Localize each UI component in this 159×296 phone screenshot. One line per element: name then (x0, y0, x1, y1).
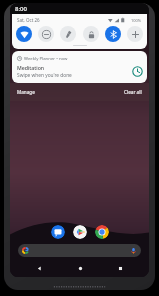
button[interactable]: Recent apps (109, 261, 131, 275)
button[interactable]: Flashlight (60, 26, 76, 42)
button[interactable]: Play Store (73, 225, 87, 239)
button[interactable]: Weekly Planner • now (12, 51, 147, 83)
button[interactable]: Manage (14, 87, 38, 97)
button[interactable]: Bluetooth (105, 26, 121, 42)
staticText: Clear all (124, 89, 142, 95)
button[interactable]: Messages (51, 225, 65, 239)
staticText: Meditation (17, 64, 45, 71)
button[interactable]: Do not disturb (38, 26, 54, 42)
button[interactable]: Add tile (127, 26, 143, 42)
button[interactable]: Clear all (121, 87, 145, 97)
button[interactable]: Wi-Fi (16, 26, 32, 42)
button[interactable]: Auto-rotate (83, 26, 99, 42)
staticText: Sat, Oct 26 (17, 17, 40, 23)
button[interactable]: Back (28, 261, 50, 275)
staticText: 8:00 (15, 5, 27, 13)
button[interactable]: Home (69, 261, 91, 275)
staticText: 100% (131, 18, 142, 23)
button[interactable]: Search (18, 244, 141, 257)
staticText: Weekly Planner • now (24, 55, 68, 61)
staticText: Manage (17, 89, 35, 95)
staticText: Swipe when you're done (17, 72, 72, 79)
button[interactable]: Chrome (95, 225, 109, 239)
